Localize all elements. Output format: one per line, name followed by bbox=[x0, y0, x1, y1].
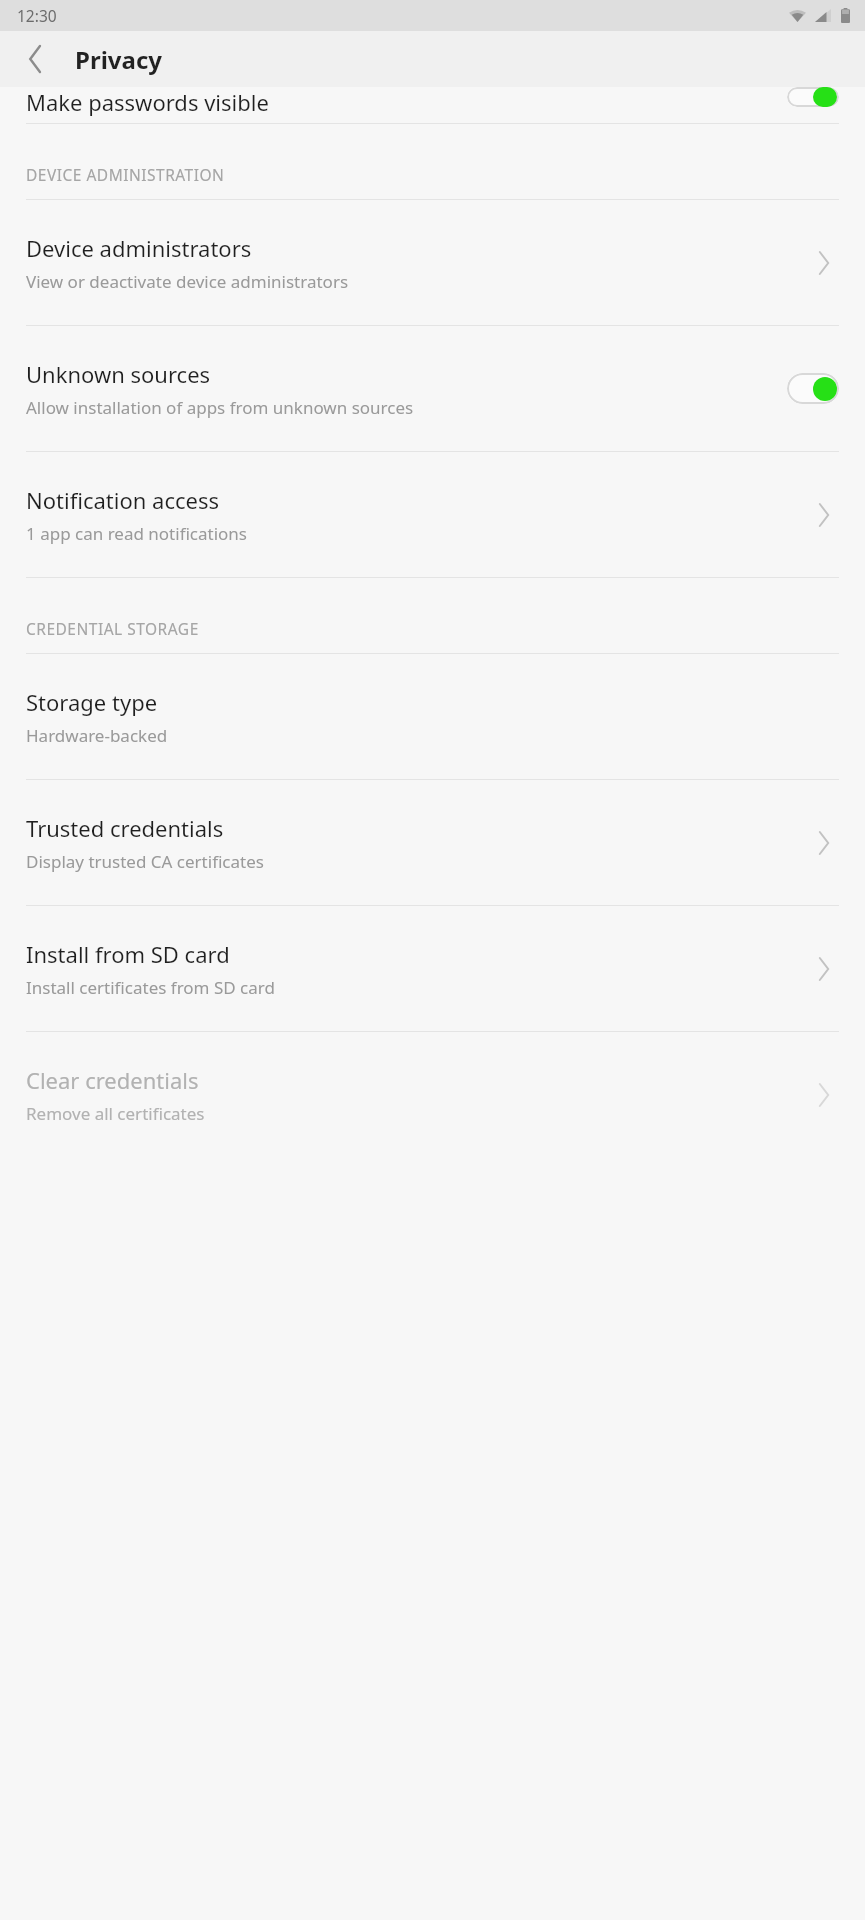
staticText: Storage type bbox=[26, 687, 158, 717]
button[interactable]: Device administrators bbox=[0, 200, 865, 325]
staticText: Unknown sources bbox=[26, 359, 211, 389]
staticText: Allow installation of apps from unknown … bbox=[26, 396, 414, 419]
button[interactable]: Toggle bbox=[787, 87, 839, 107]
button[interactable]: Storage type bbox=[0, 654, 865, 779]
staticText: Device administrators bbox=[26, 233, 252, 263]
button[interactable]: Trusted credentials bbox=[0, 780, 865, 905]
button[interactable]: Notification access bbox=[0, 452, 865, 577]
button[interactable]: Toggle bbox=[787, 373, 839, 404]
staticText: 1 app can read notifications bbox=[26, 522, 248, 545]
staticText: Trusted credentials bbox=[26, 813, 224, 843]
staticText: DEVICE ADMINISTRATION bbox=[26, 164, 225, 185]
staticText: 12:30 bbox=[17, 5, 57, 26]
staticText: View or deactivate device administrators bbox=[26, 270, 349, 293]
staticText: Display trusted CA certificates bbox=[26, 850, 264, 873]
button[interactable]: Unknown sources bbox=[0, 326, 865, 451]
staticText: Clear credentials bbox=[26, 1065, 199, 1095]
staticText: Install from SD card bbox=[26, 939, 230, 969]
staticText: CREDENTIAL STORAGE bbox=[26, 618, 199, 639]
staticText: Install certificates from SD card bbox=[26, 976, 275, 999]
staticText: Remove all certificates bbox=[26, 1102, 205, 1125]
button[interactable]: Back bbox=[14, 37, 58, 81]
staticText: Make passwords visible bbox=[26, 87, 775, 117]
staticText: Privacy bbox=[75, 43, 162, 76]
button[interactable]: Clear credentials bbox=[0, 1032, 865, 1157]
button[interactable]: Make passwords visible bbox=[0, 87, 865, 123]
button[interactable]: Install from SD card bbox=[0, 906, 865, 1031]
staticText: Hardware-backed bbox=[26, 724, 168, 747]
staticText: Notification access bbox=[26, 485, 219, 515]
